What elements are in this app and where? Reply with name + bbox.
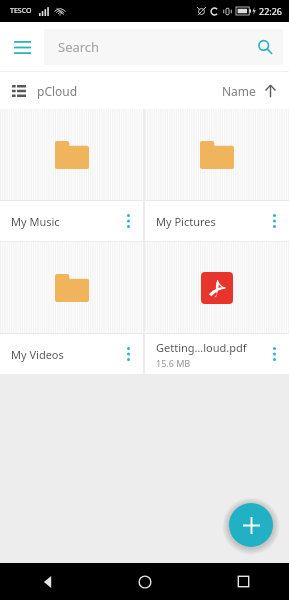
staticText: Getting…loud.pdf [156,340,247,355]
button[interactable]: Home [125,563,165,600]
staticText: 15.6 MB [156,357,191,369]
button[interactable]: More options for My Music [113,201,143,241]
staticText: Name [222,83,256,99]
button[interactable]: More options for My Pictures [259,201,289,241]
staticText: TESCO [10,6,32,16]
button[interactable]: Switch to list view [0,72,37,109]
staticText: My Music [11,214,60,229]
button[interactable]: Search [247,29,283,65]
button[interactable]: Back [27,563,67,600]
staticText: My Pictures [156,214,216,229]
button[interactable]: Name [214,72,285,109]
button[interactable]: More options for Getting…loud.pdf [259,334,289,374]
button[interactable]: My Pictures [145,109,289,241]
button[interactable]: More options for My Videos [113,334,143,374]
staticText: 22:26 [259,5,283,17]
button[interactable]: Recent apps [223,563,263,600]
button[interactable]: Getting…loud.pdf [145,242,289,374]
staticText: Search [58,38,100,56]
button[interactable]: Open navigation menu [0,25,44,69]
button[interactable]: Add [229,503,273,547]
staticText: pCloud [37,83,78,99]
button[interactable]: My Music [0,109,143,241]
button[interactable]: Search [44,29,283,65]
staticText: My Videos [11,347,64,362]
button[interactable]: My Videos [0,242,143,374]
